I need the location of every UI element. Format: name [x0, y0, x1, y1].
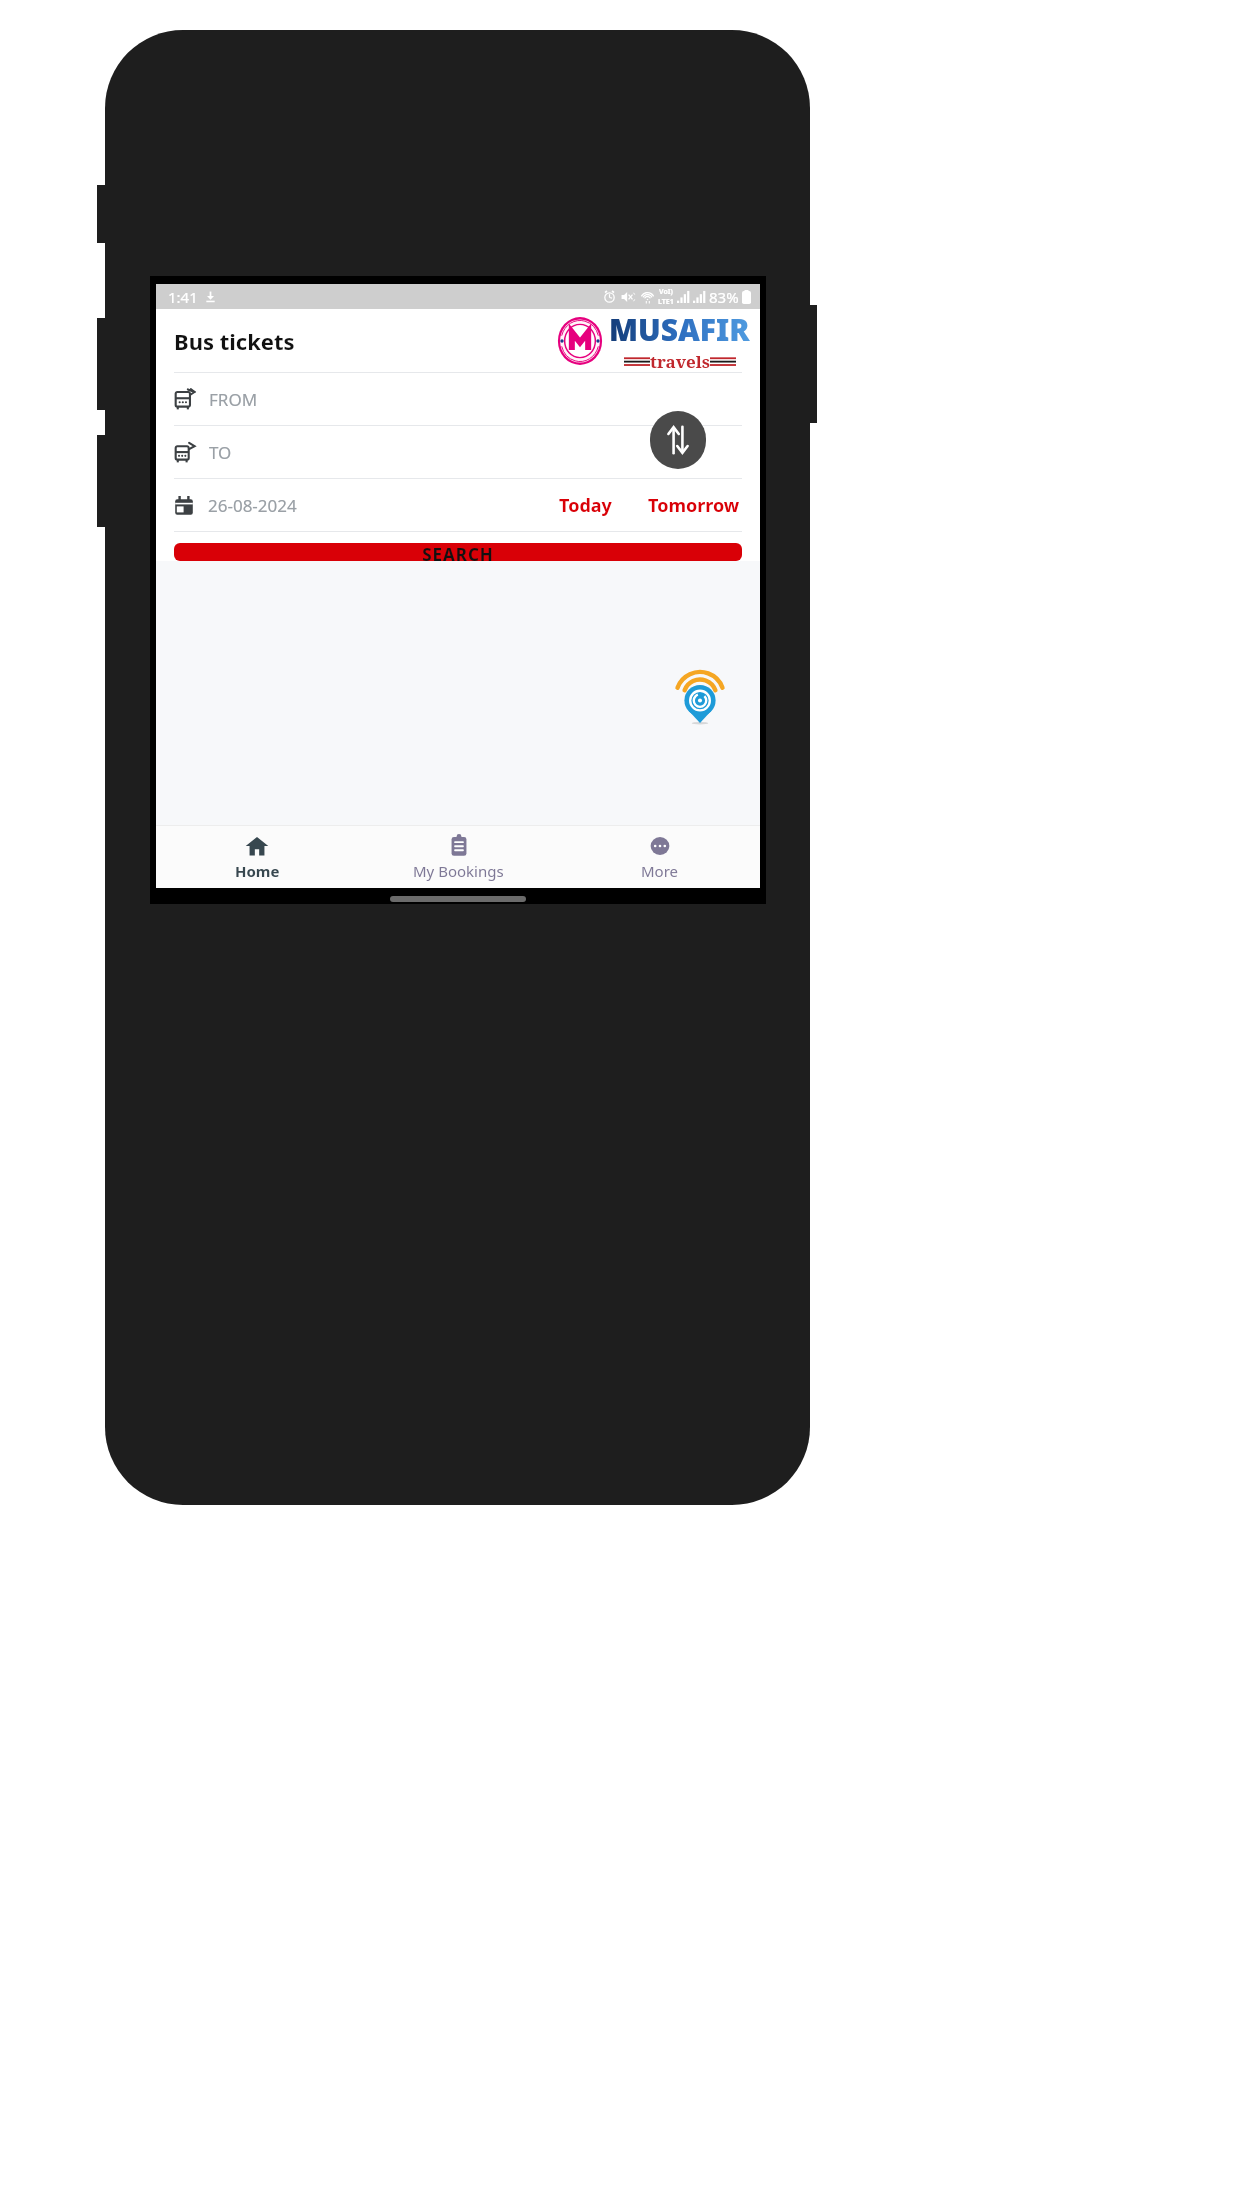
staticText: FROM — [209, 388, 258, 411]
staticText: 1:41 — [168, 287, 198, 307]
staticText: travels — [650, 350, 710, 373]
button[interactable]: TO — [174, 426, 742, 478]
staticText: Home — [235, 861, 280, 881]
staticText: 26-08-2024 — [208, 494, 297, 517]
staticText: Today — [559, 493, 612, 518]
button[interactable]: My Bookings — [358, 826, 559, 888]
staticText: More — [641, 861, 679, 881]
button[interactable]: SEARCH — [174, 543, 742, 561]
staticText: VoI) — [659, 287, 673, 297]
button[interactable]: More — [559, 826, 760, 888]
staticText: TO — [209, 441, 232, 464]
staticText: Tomorrow — [648, 493, 740, 518]
button[interactable]: 26-08-2024 — [174, 494, 551, 517]
button[interactable]: Home — [156, 826, 358, 888]
staticText: 83% — [709, 287, 739, 307]
staticText: LTE1 — [658, 297, 674, 307]
button[interactable]: FROM — [174, 373, 742, 425]
staticText: Bus tickets — [174, 326, 295, 356]
button[interactable]: Today — [551, 487, 620, 524]
staticText: SEARCH — [422, 543, 494, 561]
staticText: My Bookings — [413, 861, 504, 881]
staticText: MUSAFIR — [609, 309, 750, 350]
button[interactable]: Tomorrow — [646, 487, 742, 524]
button[interactable]: Swap from and to — [650, 411, 706, 469]
